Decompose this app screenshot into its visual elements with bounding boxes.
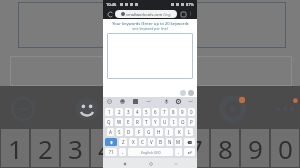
staticText: E (127, 119, 130, 125)
button[interactable]: 9 (179, 108, 186, 116)
button[interactable]: More (187, 98, 194, 105)
staticText: K (178, 129, 181, 135)
button[interactable]: I (170, 118, 177, 126)
button[interactable]: J (165, 128, 173, 136)
staticText: /ing (163, 12, 171, 17)
staticText: P (190, 119, 193, 125)
staticText: 3 (68, 131, 83, 166)
staticText: English (UK) (141, 150, 161, 155)
staticText: I (173, 119, 175, 125)
button[interactable]: ?1 (105, 148, 117, 156)
staticText: J (168, 129, 170, 135)
staticText: smallworkools.com (126, 12, 163, 17)
staticText: H (157, 129, 161, 135)
staticText: 8 (172, 109, 175, 115)
button[interactable]: V (148, 138, 155, 146)
button[interactable]: 7 (161, 108, 168, 116)
staticText: Z (122, 139, 125, 145)
button[interactable]: Q (105, 118, 113, 126)
staticText: R (136, 119, 139, 125)
button[interactable]: Scroll to top (188, 90, 194, 96)
button[interactable]: K (175, 128, 183, 136)
button[interactable]: T (143, 118, 150, 126)
button[interactable]: U (161, 118, 168, 126)
staticText: 1 (108, 109, 111, 115)
button[interactable]: 8 (170, 108, 177, 116)
button[interactable]: Back (120, 159, 129, 168)
button[interactable]: W (115, 118, 123, 126)
staticText: D (127, 129, 131, 135)
button[interactable]: Z (119, 138, 127, 146)
staticText: G (147, 129, 151, 135)
button[interactable]: G (145, 128, 153, 136)
button[interactable]: GIF (145, 98, 152, 105)
staticText: 1 (8, 131, 23, 166)
button[interactable]: Emoji (119, 98, 126, 105)
button[interactable]: Shift (105, 138, 117, 146)
staticText: 2 (38, 131, 53, 166)
button[interactable]: Voice input (163, 98, 170, 105)
button[interactable]: B (157, 138, 164, 146)
button[interactable]: C (139, 138, 146, 146)
staticText: 10:46 (106, 2, 117, 7)
staticText: 3 (127, 109, 130, 115)
button[interactable]: P (188, 118, 195, 126)
button[interactable]: H (155, 128, 163, 136)
button[interactable]: . (175, 148, 182, 156)
button[interactable]: 2 (115, 108, 123, 116)
button[interactable]: Recents (171, 159, 180, 168)
staticText: S (118, 129, 121, 135)
button[interactable]: 6 (152, 108, 159, 116)
button[interactable]: Stickers (132, 98, 139, 105)
button[interactable]: Tabs (179, 10, 187, 18)
button[interactable]: smallworkools.com (117, 10, 175, 18)
button[interactable]: Enter (184, 148, 195, 156)
staticText: N (168, 139, 172, 145)
staticText: 9 (248, 131, 263, 166)
staticText: 6 (158, 131, 173, 166)
staticText: one keyword per line) (132, 26, 168, 31)
button[interactable]: E (125, 118, 132, 126)
staticText: 6 (154, 109, 157, 115)
button[interactable]: Home (146, 159, 155, 168)
staticText: 7 (188, 131, 203, 166)
staticText: 87% (186, 2, 194, 7)
staticText: 2 (118, 109, 121, 115)
button[interactable]: 4 (134, 108, 141, 116)
button[interactable]: 3 (125, 108, 132, 116)
staticText: ?1 (109, 149, 114, 155)
button[interactable]: A (107, 128, 114, 136)
button[interactable]: Translate (106, 98, 113, 105)
staticText: Q (107, 119, 111, 125)
button[interactable]: Y (152, 118, 159, 126)
button[interactable]: , (119, 148, 126, 156)
button[interactable]: More options (187, 10, 194, 17)
button[interactable]: R (134, 118, 141, 126)
staticText: L (188, 129, 191, 135)
staticText: 7 (163, 109, 166, 115)
button[interactable]: N (166, 138, 173, 146)
button[interactable]: M (175, 138, 182, 146)
staticText: O (181, 119, 185, 125)
button[interactable]: 0 (188, 108, 195, 116)
button[interactable]: Reload (106, 10, 114, 18)
button[interactable]: S (116, 128, 123, 136)
staticText: 8 (218, 131, 233, 166)
button[interactable]: 5 (143, 108, 150, 116)
button[interactable]: English (UK) (128, 148, 173, 156)
button[interactable]: X (129, 138, 137, 146)
button[interactable]: Accessibility (180, 90, 186, 96)
button[interactable] (107, 33, 193, 79)
button[interactable]: L (185, 128, 193, 136)
staticText: , (122, 149, 124, 155)
staticText: W (117, 119, 122, 125)
button[interactable]: 1 (105, 108, 113, 116)
staticText: 4 (98, 131, 113, 166)
staticText: 5 (145, 109, 148, 115)
button[interactable]: F (135, 128, 143, 136)
button[interactable]: Backspace (184, 138, 195, 146)
button[interactable]: O (179, 118, 186, 126)
staticText: 9 (181, 109, 184, 115)
button[interactable]: Settings (175, 98, 182, 105)
button[interactable]: D (125, 128, 133, 136)
